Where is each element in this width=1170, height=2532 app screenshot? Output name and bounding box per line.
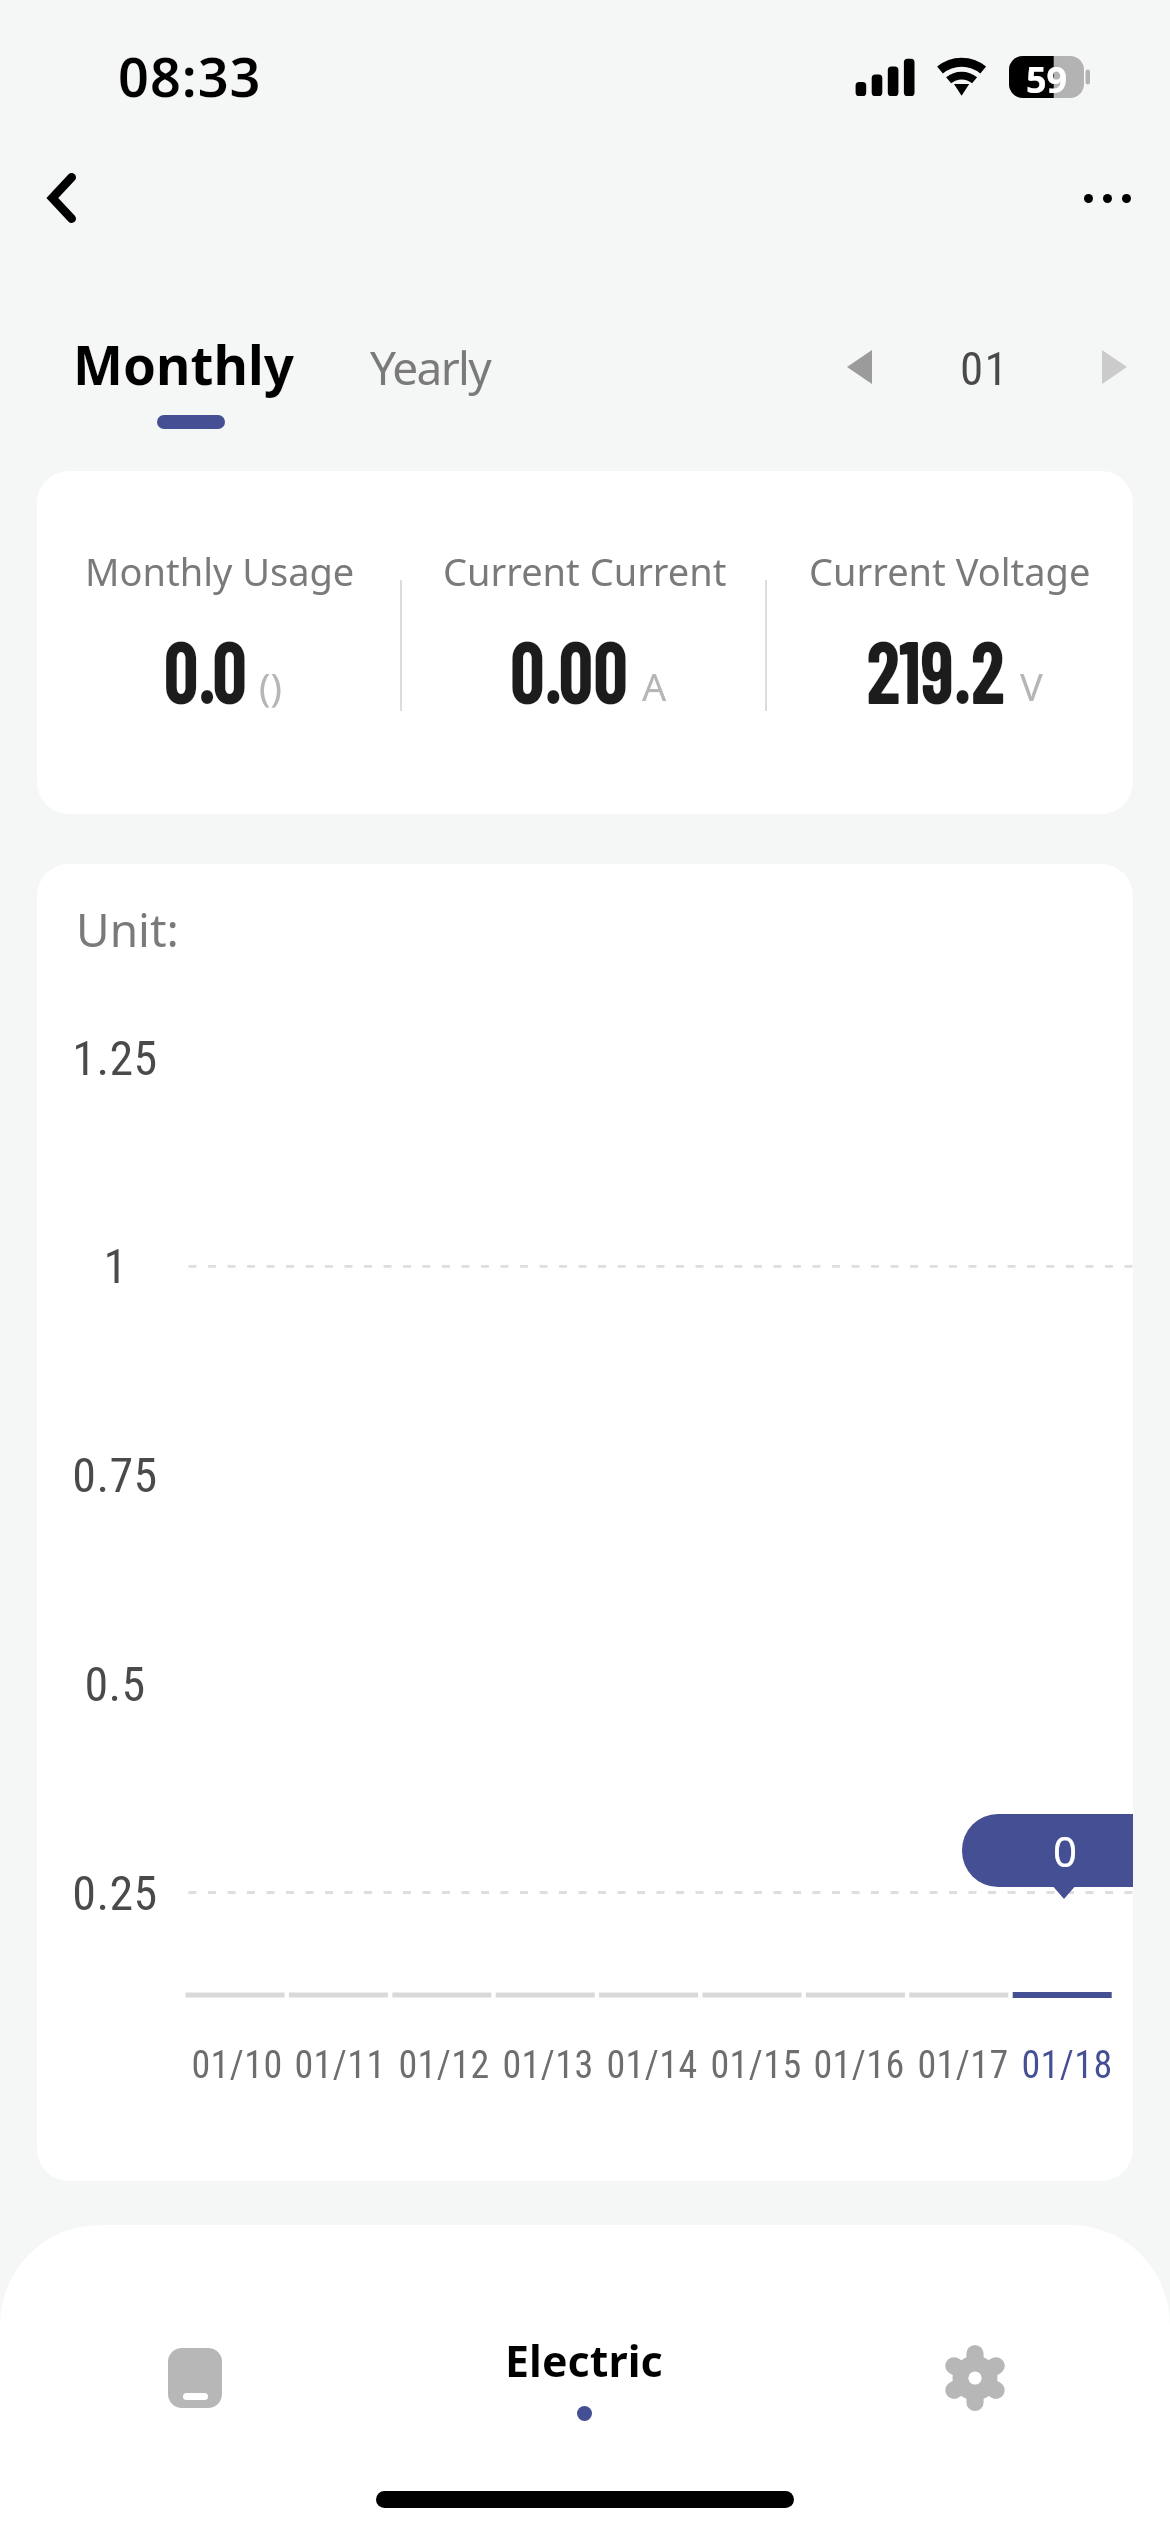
staticText: A	[642, 660, 667, 712]
staticText: Current Current	[443, 545, 727, 597]
button[interactable]: Electric	[445, 2318, 725, 2442]
staticText: 01/11	[294, 2043, 386, 2088]
button[interactable]: Current Voltage	[767, 471, 1133, 721]
staticText: 01/14	[606, 2043, 698, 2088]
button[interactable]: More options	[1040, 156, 1144, 240]
staticText: 01/13	[502, 2043, 594, 2088]
staticText: ()	[259, 660, 282, 712]
staticText: V	[1020, 660, 1043, 712]
staticText: 1	[103, 1238, 128, 1294]
staticText: Monthly Usage	[85, 545, 355, 597]
staticText: Electric	[505, 2331, 663, 2390]
staticText: 01/10	[191, 2043, 283, 2088]
staticText: 01	[960, 341, 1009, 396]
staticText: 0.0	[164, 617, 247, 721]
button[interactable]: Monthly	[73, 328, 295, 400]
staticText: Unit:	[76, 898, 179, 961]
staticText: 0.00	[510, 617, 628, 721]
staticText: 1.25	[72, 1030, 158, 1086]
staticText: 59	[1026, 55, 1068, 97]
staticText: 01/18	[1021, 2043, 1113, 2088]
staticText: Monthly	[73, 328, 295, 400]
staticText: 0.5	[84, 1656, 146, 1712]
button[interactable]: Settings	[915, 2318, 1035, 2438]
staticText: 0.25	[72, 1865, 158, 1921]
button[interactable]: Back	[17, 153, 107, 243]
staticText: 01/12	[398, 2043, 490, 2088]
button[interactable]: Yearly	[370, 336, 491, 399]
button[interactable]: Previous month	[822, 330, 896, 404]
staticText: 01/16	[813, 2043, 905, 2088]
staticText: 0.75	[72, 1447, 158, 1503]
button[interactable]: Monthly Usage	[37, 471, 402, 721]
staticText: 08:33	[118, 39, 262, 113]
staticText: Yearly	[370, 336, 491, 399]
button[interactable]: Next month	[1077, 330, 1151, 404]
staticText: Current Voltage	[809, 545, 1091, 597]
staticText: 219.2	[866, 617, 1005, 721]
staticText: 0	[1053, 1822, 1078, 1879]
staticText: 01/17	[917, 2043, 1009, 2088]
button[interactable]: Current Current	[402, 471, 767, 721]
staticText: 01/15	[710, 2043, 802, 2088]
button[interactable]: Devices	[135, 2318, 255, 2438]
